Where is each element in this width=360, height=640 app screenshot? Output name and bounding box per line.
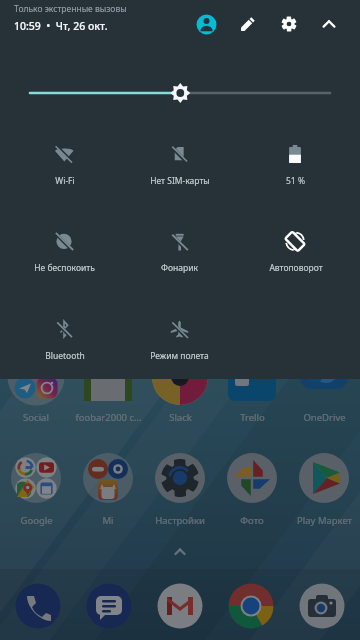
button[interactable]: Режим полета — [122, 297, 237, 377]
button[interactable]: Date and time — [14, 2, 174, 36]
button[interactable]: Collapse — [311, 6, 347, 42]
staticText: Нет SIM-карты — [150, 175, 210, 187]
button[interactable]: Настройки — [144, 448, 216, 528]
button[interactable]: Phone — [16, 584, 61, 629]
button[interactable]: Account — [188, 6, 224, 42]
button[interactable]: Mi — [72, 448, 144, 528]
button[interactable]: 51 % — [237, 122, 352, 202]
button[interactable]: Bluetooth — [6, 297, 121, 377]
staticText: 10:59 • Чт, 26 окт. — [14, 19, 108, 33]
button[interactable]: Slack — [144, 380, 216, 425]
staticText: Wi-Fi — [55, 175, 75, 187]
button[interactable]: Settings — [271, 6, 307, 42]
staticText: Фонарик — [161, 262, 198, 274]
staticText: Настройки — [155, 514, 205, 527]
staticText: Режим полета — [150, 350, 209, 362]
button[interactable]: Фото — [216, 448, 288, 528]
staticText: Только экстренные вызовы — [14, 3, 127, 15]
button[interactable]: OneDrive — [288, 380, 360, 425]
button[interactable]: Edit — [230, 6, 266, 42]
staticText: foobar2000 c… — [75, 411, 142, 424]
staticText: Slack — [169, 411, 192, 424]
button[interactable]: Gmail — [158, 584, 203, 629]
button[interactable]: Автоповорот — [237, 210, 352, 290]
button[interactable]: Chrome — [229, 584, 274, 629]
button[interactable]: Social — [0, 380, 72, 425]
button[interactable]: Нет SIM-карты — [122, 122, 237, 202]
button[interactable]: Не беспокоить — [6, 210, 121, 290]
staticText: Mi — [102, 514, 114, 527]
staticText: OneDrive — [303, 411, 346, 424]
staticText: Google — [20, 514, 53, 527]
button[interactable]: Play Маркет — [288, 448, 360, 528]
button[interactable]: Brightness — [20, 82, 340, 104]
staticText: Не беспокоить — [34, 262, 95, 274]
button[interactable]: Trello — [216, 380, 288, 425]
button[interactable]: Wi-Fi — [6, 122, 121, 202]
button[interactable]: foobar2000 c… — [72, 380, 144, 425]
staticText: Social — [23, 411, 49, 424]
staticText: Фото — [240, 514, 264, 527]
staticText: 51 % — [286, 175, 305, 187]
button[interactable]: Camera — [300, 584, 345, 629]
staticText: Bluetooth — [45, 350, 85, 362]
staticText: Trello — [240, 411, 265, 424]
button[interactable]: Google — [0, 448, 72, 528]
staticText: Автоповорот — [269, 262, 323, 274]
button[interactable]: Фонарик — [122, 210, 237, 290]
button[interactable]: Messages — [87, 584, 132, 629]
button[interactable]: All apps — [166, 542, 194, 562]
staticText: Play Маркет — [297, 514, 352, 527]
